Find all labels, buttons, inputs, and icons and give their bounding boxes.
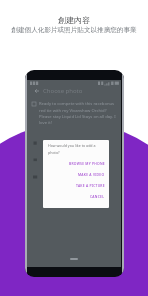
button[interactable]: BROWSE MY PHONE <box>43 158 109 169</box>
staticText: 創建內容 <box>58 15 90 25</box>
staticText: How would you like to add a photo? <box>48 143 96 155</box>
staticText: CANCEL <box>90 194 105 199</box>
staticText: TAKE A PICTURE <box>76 183 105 188</box>
staticText: BROWSE MY PHONE <box>69 161 105 166</box>
staticText: Ready to compete with this racebonus red… <box>39 101 117 125</box>
button[interactable]: TAKE A PICTURE <box>43 180 109 191</box>
button[interactable]: Back <box>34 88 40 94</box>
button[interactable]: CANCEL <box>43 191 109 202</box>
button[interactable]: MAKE A VIDEO <box>43 169 109 180</box>
staticText: 創建個人化影片或照片貼文以推廣您的事業 <box>11 26 137 34</box>
staticText: Choose photo <box>43 87 83 95</box>
staticText: MAKE A VIDEO <box>78 172 105 177</box>
